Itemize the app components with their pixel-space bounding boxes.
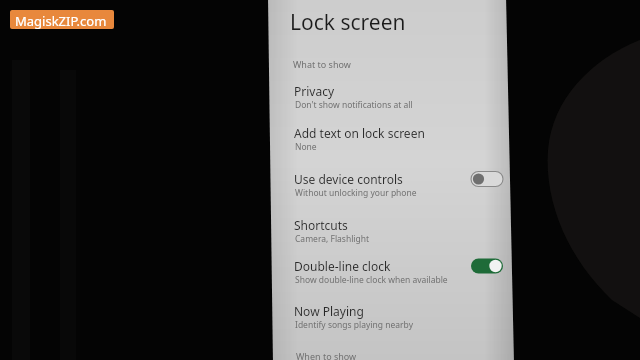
staticText: Now Playing — [294, 303, 364, 319]
staticText: Camera, Flashlight — [295, 233, 370, 245]
staticText: Identify songs playing nearby — [295, 319, 413, 331]
staticText: Show double-line clock when available — [295, 274, 448, 286]
button[interactable]: Double-line clock on — [471, 256, 503, 276]
staticText: Use device controls — [294, 171, 403, 187]
button[interactable] — [273, 299, 511, 339]
button[interactable]: Use device controls off — [471, 169, 503, 189]
staticText: When to show — [296, 350, 357, 360]
button[interactable] — [273, 79, 511, 119]
staticText: MagiskZIP.com — [15, 12, 107, 29]
button[interactable] — [273, 121, 511, 161]
staticText: Don't show notifications at all — [295, 99, 413, 111]
button[interactable] — [273, 213, 511, 253]
staticText: Shortcuts — [294, 217, 348, 233]
button[interactable] — [273, 254, 511, 294]
staticText: Privacy — [294, 83, 335, 99]
button[interactable] — [273, 167, 511, 207]
staticText: What to show — [293, 58, 351, 70]
staticText: Lock screen — [290, 8, 406, 37]
staticText: Double-line clock — [294, 258, 391, 274]
staticText: Add text on lock screen — [294, 125, 425, 141]
staticText: Without unlocking your phone — [295, 187, 417, 199]
staticText: None — [295, 141, 317, 153]
